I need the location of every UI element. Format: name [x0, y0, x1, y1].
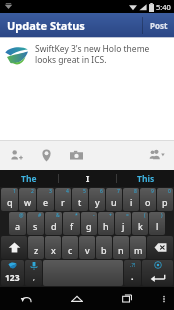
staticText: a [15, 220, 21, 232]
staticText: 2 [31, 188, 34, 195]
staticText: 4 [66, 188, 69, 195]
button[interactable]: 7 [106, 188, 122, 211]
button[interactable]: # [27, 212, 44, 235]
button[interactable]: 9 [140, 188, 156, 211]
button[interactable]: x [45, 236, 61, 259]
staticText: l [156, 220, 159, 232]
button[interactable]: More options [153, 287, 174, 310]
button[interactable]: v [79, 236, 95, 259]
button[interactable]: 2 [19, 188, 36, 211]
button[interactable]: Tag people [6, 145, 26, 165]
button[interactable]: Post [143, 13, 174, 37]
staticText: k [138, 220, 143, 232]
button[interactable]: + [98, 212, 114, 235]
button[interactable]: ( [132, 212, 148, 235]
staticText: u [111, 196, 117, 208]
staticText: I [86, 173, 90, 185]
staticText: y [95, 196, 100, 208]
button[interactable]: Home [51, 287, 102, 310]
button[interactable]: Enter [142, 260, 173, 286]
button[interactable]: 5 [72, 188, 88, 211]
button[interactable]: Voice input [25, 260, 42, 286]
staticText: b [101, 244, 107, 256]
staticText: g [86, 220, 92, 232]
button[interactable]: Backspace [147, 236, 173, 259]
staticText: f [70, 220, 74, 232]
button[interactable]: Back [0, 287, 51, 310]
button[interactable]: The [0, 170, 58, 187]
staticText: p [162, 196, 168, 208]
button[interactable]: n [113, 236, 129, 259]
button[interactable]: 0 [157, 188, 173, 211]
staticText: n [118, 244, 124, 256]
staticText: w [24, 196, 32, 208]
staticText: j [122, 220, 125, 232]
staticText: x [51, 244, 56, 256]
button[interactable]: m [130, 236, 146, 259]
staticText: 7 [117, 188, 120, 195]
staticText: = [126, 212, 129, 219]
staticText: 8 [134, 188, 137, 195]
staticText: 123 [5, 272, 20, 284]
button[interactable]: Update Status [7, 13, 85, 37]
button[interactable]: 3 [37, 188, 54, 211]
staticText: m [134, 244, 143, 256]
staticText: SwiftKey 3's new Holo theme looks great … [35, 43, 168, 65]
staticText: s [33, 220, 38, 232]
staticText: . [131, 270, 134, 282]
button[interactable]: Add location [36, 145, 56, 165]
button[interactable]: Space [43, 260, 123, 286]
staticText: 5 [83, 188, 86, 195]
staticText: t [78, 196, 82, 208]
staticText: e [43, 196, 49, 208]
staticText: * [75, 212, 78, 219]
staticText: ( [144, 212, 146, 219]
staticText: Update Status [7, 18, 85, 33]
button[interactable]: Add photo [66, 145, 86, 165]
button[interactable]: b [96, 236, 112, 259]
staticText: d [51, 220, 57, 232]
staticText: This [137, 173, 155, 185]
staticText: z [34, 244, 39, 256]
staticText: 0 [168, 188, 171, 195]
button[interactable]: 1 [1, 188, 18, 211]
staticText: c [68, 244, 73, 256]
button[interactable]: - [81, 212, 97, 235]
staticText: o [145, 196, 151, 208]
button[interactable]: Numbers and symbols [1, 260, 24, 286]
button[interactable]: I [59, 170, 116, 187]
button[interactable]: Shift [1, 236, 27, 259]
staticText: i [130, 196, 133, 208]
staticText: .?! [130, 261, 136, 268]
button[interactable]: This [117, 170, 174, 187]
staticText: Post [150, 20, 168, 31]
button[interactable]: c [62, 236, 78, 259]
button[interactable]: Period [124, 260, 141, 286]
staticText: 3 [49, 188, 52, 195]
staticText: , [33, 273, 35, 283]
button[interactable]: 4 [55, 188, 71, 211]
button[interactable]: 8 [123, 188, 139, 211]
staticText: # [38, 212, 42, 219]
staticText: - [93, 212, 95, 219]
staticText: r [61, 196, 65, 208]
button[interactable]: & [45, 212, 62, 235]
staticText: ) [161, 212, 163, 219]
button[interactable]: ) [149, 212, 165, 235]
button[interactable]: z [28, 236, 44, 259]
staticText: @ [19, 212, 24, 219]
staticText: + [109, 212, 112, 219]
button[interactable]: Audience selector [146, 144, 168, 166]
button[interactable]: 6 [89, 188, 105, 211]
staticText: 5:40 [156, 2, 171, 12]
staticText: 6 [100, 188, 103, 195]
staticText: & [56, 212, 60, 219]
staticText: 9 [151, 188, 154, 195]
staticText: 1 [13, 188, 16, 195]
button[interactable]: = [115, 212, 131, 235]
button[interactable]: Recent apps [102, 287, 153, 310]
button[interactable]: @ [9, 212, 26, 235]
button[interactable]: * [63, 212, 80, 235]
staticText: q [7, 196, 13, 208]
staticText: The [21, 173, 37, 185]
